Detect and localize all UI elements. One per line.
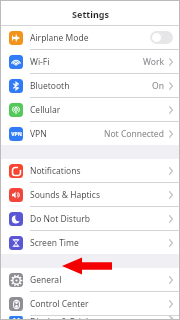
button[interactable]: Control Center	[0, 292, 180, 315]
staticText: Screen Time	[30, 237, 169, 249]
button[interactable]: Wi-Fi	[0, 50, 180, 73]
staticText: Settings	[72, 8, 109, 20]
button[interactable]: Sounds & Haptics	[0, 183, 180, 206]
staticText: Display & Brightness	[30, 316, 169, 320]
button[interactable]: Do Not Disturb	[0, 207, 180, 230]
button[interactable]: VPN	[0, 122, 180, 145]
button[interactable]: AA	[0, 316, 180, 320]
staticText: Notifications	[30, 165, 169, 177]
staticText: Work	[143, 56, 164, 68]
staticText: Sounds & Haptics	[30, 189, 169, 201]
staticText: General	[30, 274, 169, 286]
button[interactable]: General	[0, 268, 180, 291]
staticText: Wi-Fi	[30, 56, 143, 68]
button[interactable]: Cellular	[0, 98, 180, 121]
button[interactable]: Bluetooth	[0, 74, 180, 97]
staticText: Cellular	[30, 104, 169, 116]
staticText: Bluetooth	[30, 80, 152, 92]
button[interactable]: Notifications	[0, 159, 180, 182]
button[interactable]: Screen Time	[0, 231, 180, 254]
staticText: Airplane Mode	[30, 32, 150, 44]
button[interactable]: Airplane Mode	[0, 26, 180, 49]
staticText: VPN	[11, 131, 22, 138]
staticText: Not Connected	[104, 128, 164, 140]
staticText: AA	[12, 316, 21, 320]
staticText: Do Not Disturb	[30, 213, 169, 225]
staticText: On	[152, 80, 164, 92]
button[interactable]	[150, 31, 173, 44]
staticText: VPN	[30, 128, 104, 140]
staticText: Control Center	[30, 298, 169, 310]
